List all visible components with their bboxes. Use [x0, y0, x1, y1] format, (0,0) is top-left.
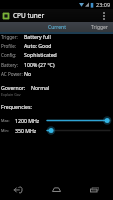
button[interactable]: Recents [75, 178, 113, 200]
staticText: 23:09 [96, 1, 111, 8]
staticText: Trigger: [1, 34, 18, 40]
button[interactable]: AC Power: [0, 69, 113, 78]
staticText: Max: [1, 118, 10, 123]
button[interactable]: Min: [0, 126, 113, 135]
button[interactable] [0, 22, 28, 32]
staticText: 350 MHz [15, 127, 37, 134]
button[interactable]: Trigger [85, 22, 113, 32]
staticText: 100% (27 °C) [24, 61, 55, 68]
button[interactable]: Trigger: [0, 32, 113, 41]
staticText: Explain Gov [1, 92, 21, 97]
staticText: 1200 MHz [15, 117, 40, 124]
staticText: CPU tuner [13, 11, 45, 20]
button[interactable]: Config: [0, 50, 113, 59]
button[interactable]: Profile: [0, 41, 113, 50]
staticText: Profile: [1, 43, 17, 49]
staticText: Battery: [1, 62, 18, 68]
staticText: Trigger [91, 24, 108, 31]
button[interactable]: Governor: [0, 83, 113, 92]
button[interactable]: Back [0, 178, 37, 200]
staticText: Battery full [24, 33, 51, 40]
staticText: Governor: [1, 84, 26, 91]
staticText: Min: [1, 128, 9, 133]
button[interactable]: Max: [0, 116, 113, 125]
staticText: Config: [1, 52, 17, 58]
staticText: Sophisticated [24, 51, 57, 58]
staticText: Current [48, 24, 66, 31]
button[interactable]: More options [97, 9, 110, 22]
staticText: Auto: Good [24, 42, 52, 49]
button[interactable]: Current [28, 22, 85, 32]
button[interactable]: Home [37, 178, 75, 200]
staticText: AC Power: [1, 71, 23, 77]
staticText: Frequencies: [1, 103, 32, 110]
button[interactable]: Explain Gov [0, 91, 113, 98]
staticText: Normal [31, 84, 50, 91]
button[interactable]: Battery: [0, 60, 113, 69]
staticText: No [24, 70, 32, 77]
